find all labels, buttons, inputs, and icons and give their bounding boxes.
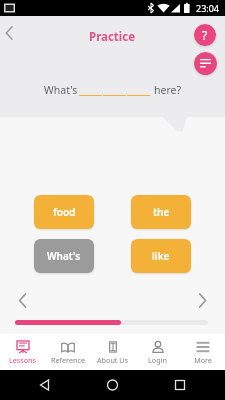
button[interactable]: Lessons	[0, 334, 45, 370]
staticText: food	[53, 205, 76, 219]
staticText: Practice	[89, 29, 136, 45]
button[interactable]: the	[131, 195, 191, 229]
button[interactable]: More	[180, 334, 225, 370]
staticText: like	[152, 249, 170, 263]
button[interactable]: Help	[194, 24, 216, 46]
button[interactable]: Menu	[194, 52, 217, 75]
button[interactable]: Back	[0, 24, 18, 42]
button[interactable]: Previous	[13, 291, 31, 309]
button[interactable]: food	[34, 195, 94, 229]
staticText: Login	[148, 355, 167, 365]
button[interactable]: What's	[34, 239, 94, 273]
button[interactable]: About Us	[90, 334, 135, 370]
staticText: What's	[44, 83, 78, 97]
button[interactable]: Login	[135, 334, 180, 370]
staticText: What's	[47, 249, 81, 263]
button[interactable]: like	[131, 239, 191, 273]
staticText: Lessons	[9, 355, 36, 365]
staticText: Reference	[51, 355, 85, 365]
staticText: here?	[154, 83, 182, 97]
button[interactable]: Reference	[45, 334, 90, 370]
staticText: More	[194, 355, 212, 365]
staticText: 23:04	[196, 2, 220, 14]
staticText: ?	[202, 27, 208, 43]
button[interactable]: Next	[193, 291, 211, 309]
staticText: the	[153, 205, 170, 219]
staticText: About Us	[97, 355, 128, 365]
